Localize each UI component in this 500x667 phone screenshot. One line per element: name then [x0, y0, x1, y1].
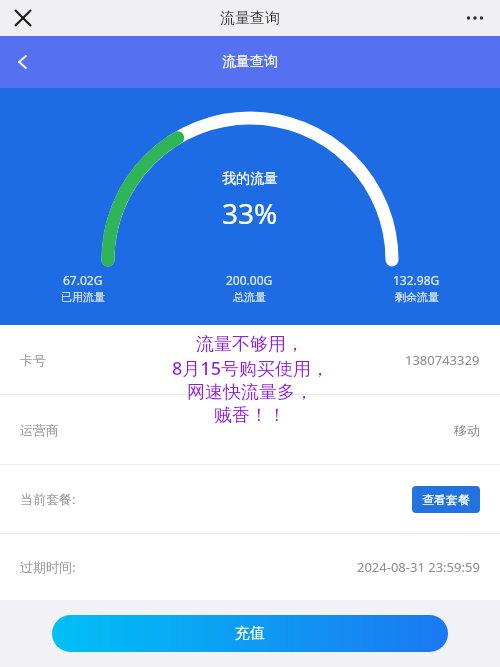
staticText: 132.98G [393, 272, 440, 288]
staticText: 8月15号购买使用， [172, 356, 329, 381]
button[interactable]: 过期时间: [0, 534, 500, 600]
staticText: 总流量 [233, 290, 266, 304]
staticText: 剩余流量 [395, 290, 439, 304]
staticText: 贼香！！ [214, 404, 286, 427]
button[interactable]: Close [8, 3, 38, 33]
staticText: 1380743329 [405, 351, 480, 369]
staticText: 流量查询 [220, 9, 280, 28]
staticText: 查看套餐 [422, 492, 470, 507]
staticText: 200.00G [226, 272, 273, 288]
staticText: 充值 [235, 624, 265, 643]
staticText: 我的流量 [222, 170, 278, 188]
staticText: 已用流量 [61, 290, 105, 304]
button[interactable]: More options [460, 3, 490, 33]
staticText: 当前套餐: [20, 490, 76, 508]
button[interactable]: 充值 [52, 615, 448, 652]
staticText: 流量查询 [222, 53, 278, 71]
button[interactable]: Back [6, 45, 40, 79]
staticText: 2024-08-31 23:59:59 [357, 558, 480, 576]
staticText: 33% [222, 194, 278, 232]
button[interactable]: 运营商 [0, 395, 500, 464]
button[interactable]: 当前套餐: [0, 465, 500, 533]
staticText: 运营商 [20, 422, 59, 438]
staticText: 移动 [454, 422, 480, 438]
staticText: 网速快流量多， [187, 381, 313, 404]
button[interactable]: 卡号 [0, 325, 500, 394]
staticText: 67.02G [63, 272, 103, 288]
staticText: 过期时间: [20, 558, 76, 576]
staticText: 卡号 [20, 352, 46, 368]
button[interactable]: 查看套餐 [412, 486, 480, 513]
staticText: 流量不够用， [196, 333, 304, 356]
